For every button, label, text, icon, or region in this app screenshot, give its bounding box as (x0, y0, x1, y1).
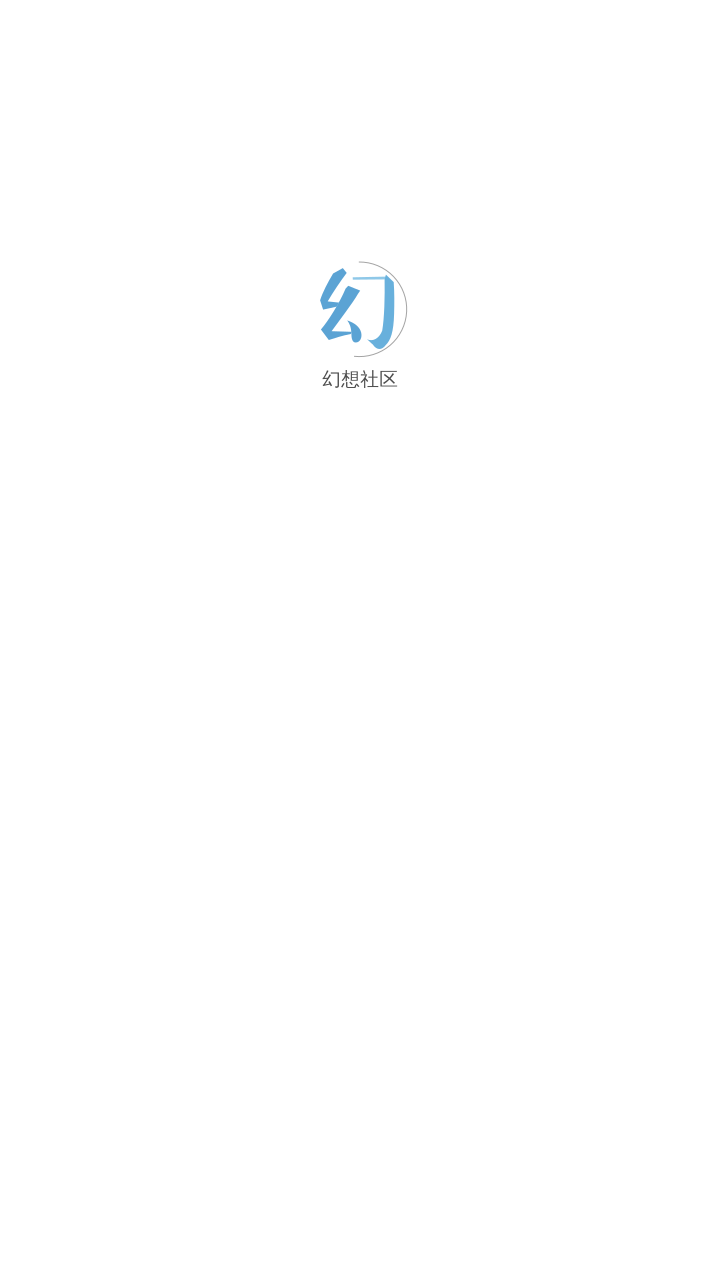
staticText: 幻想社区 (322, 368, 398, 391)
